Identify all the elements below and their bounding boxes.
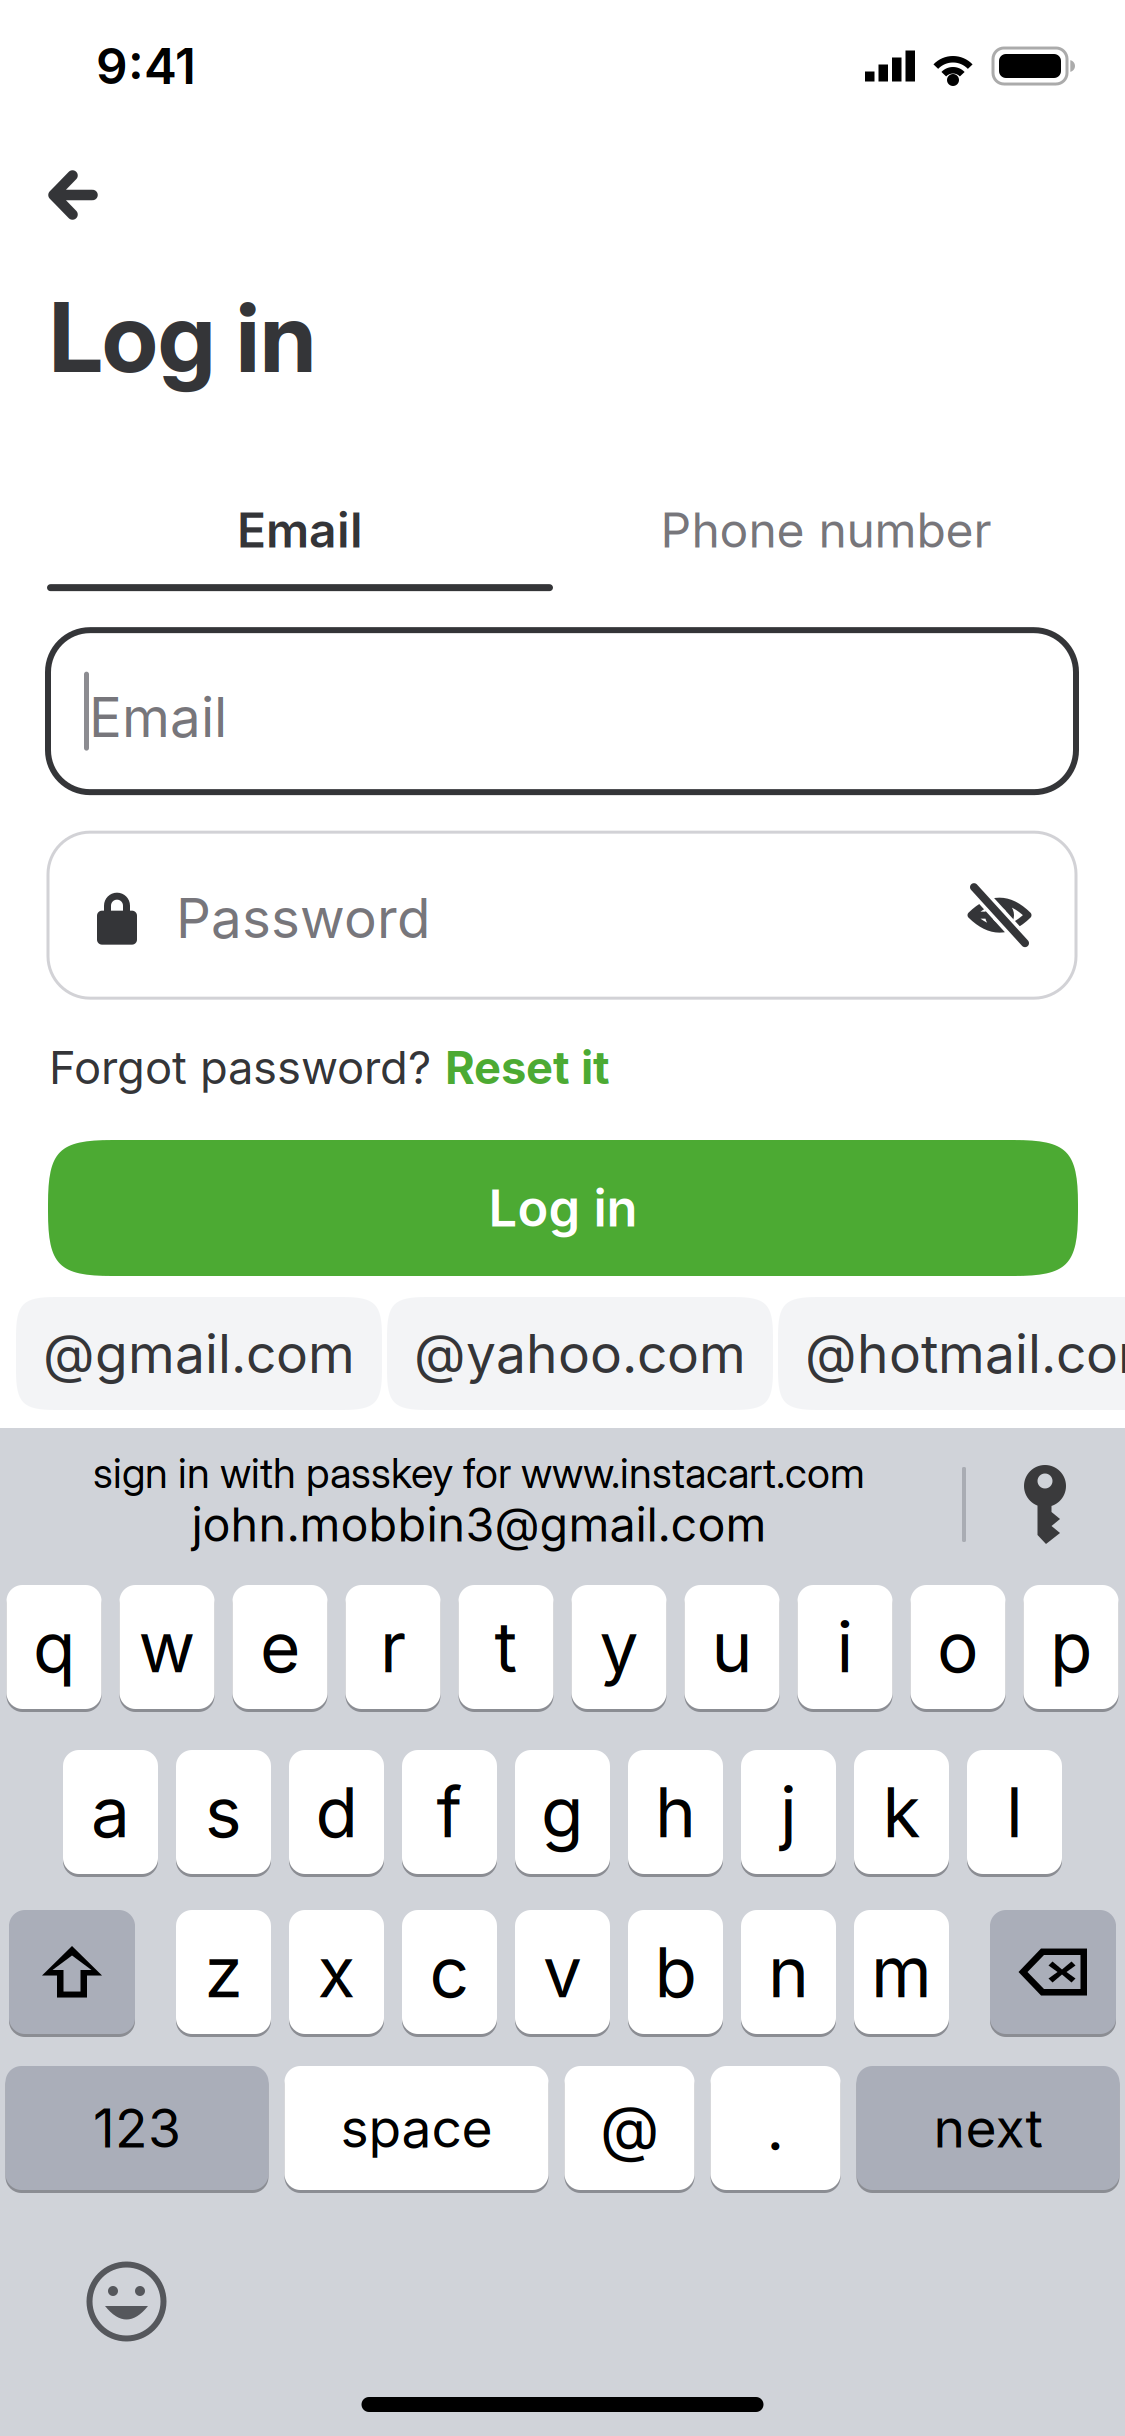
button[interactable]: z [176, 1910, 271, 2037]
staticText: @yahoo.com [414, 1321, 746, 1386]
button[interactable]: w [119, 1585, 214, 1712]
staticText: Forgot password? [49, 1040, 431, 1095]
staticText: b [654, 1930, 696, 2014]
staticText: v [543, 1930, 582, 2014]
button[interactable]: r [345, 1585, 440, 1712]
button[interactable]: f [402, 1750, 497, 1877]
button[interactable]: next [856, 2066, 1119, 2193]
button[interactable]: @gmail.com [16, 1297, 382, 1410]
button[interactable]: Delete [990, 1910, 1116, 2037]
button[interactable]: 123 [5, 2066, 268, 2193]
staticText: t [494, 1605, 517, 1689]
button[interactable]: Reset it [431, 1040, 610, 1095]
button[interactable]: . [710, 2066, 840, 2193]
button[interactable]: t [458, 1585, 553, 1712]
staticText: space [340, 2096, 492, 2160]
button[interactable]: j [741, 1750, 836, 1877]
staticText: i [836, 1605, 853, 1689]
staticText: g [541, 1770, 584, 1854]
staticText: Email [237, 501, 363, 559]
staticText: a [91, 1770, 130, 1854]
staticText: Phone number [660, 501, 991, 559]
staticText: Log in [488, 1177, 637, 1239]
button[interactable]: u [684, 1585, 779, 1712]
button[interactable]: h [628, 1750, 723, 1877]
staticText: . [766, 2091, 784, 2165]
staticText: @ [600, 2091, 659, 2165]
staticText: o [937, 1605, 979, 1689]
button[interactable]: b [628, 1910, 723, 2037]
button[interactable]: @ [564, 2066, 694, 2193]
button[interactable]: x [289, 1910, 384, 2037]
button[interactable]: Phone number [553, 476, 1099, 591]
staticText: q [33, 1605, 75, 1689]
staticText: x [317, 1930, 355, 2014]
staticText: 123 [93, 2096, 181, 2160]
staticText: h [655, 1770, 696, 1854]
button[interactable]: p [1023, 1585, 1118, 1712]
button[interactable]: i [797, 1585, 892, 1712]
button[interactable]: @yahoo.com [387, 1297, 773, 1410]
staticText: sign in with passkey for www.instacart.c… [93, 1448, 865, 1498]
button[interactable]: space [284, 2066, 548, 2193]
staticText: next [933, 2096, 1042, 2160]
button[interactable]: a [63, 1750, 158, 1877]
staticText: z [204, 1930, 242, 2014]
staticText: l [1006, 1770, 1023, 1854]
button[interactable]: d [289, 1750, 384, 1877]
staticText: y [599, 1605, 638, 1689]
staticText: r [380, 1605, 406, 1689]
staticText: d [315, 1770, 357, 1854]
button[interactable]: Back [25, 147, 121, 243]
staticText: s [205, 1770, 242, 1854]
staticText: @gmail.com [43, 1321, 355, 1386]
staticText: 9:41 [96, 36, 196, 96]
staticText: john.mobbin3@gmail.com [191, 1496, 766, 1553]
staticText: @hotmail.com [805, 1321, 1125, 1386]
staticText: Password [176, 885, 430, 951]
button[interactable]: Email [47, 476, 553, 591]
staticText: e [260, 1605, 300, 1689]
button[interactable]: g [515, 1750, 610, 1877]
button[interactable]: v [515, 1910, 610, 2037]
button[interactable]: q [6, 1585, 101, 1712]
button[interactable]: k [854, 1750, 949, 1877]
staticText: Log in [49, 279, 316, 395]
button[interactable]: Shift [9, 1910, 135, 2037]
staticText: j [780, 1770, 797, 1854]
button[interactable]: c [402, 1910, 497, 2037]
staticText: f [436, 1770, 462, 1854]
staticText: u [711, 1605, 752, 1689]
staticText: w [138, 1605, 195, 1689]
staticText: Reset it [445, 1040, 610, 1095]
button[interactable]: o [910, 1585, 1005, 1712]
button[interactable]: @hotmail.com [778, 1297, 1125, 1410]
button[interactable]: y [571, 1585, 666, 1712]
button[interactable]: e [232, 1585, 327, 1712]
staticText: p [1050, 1605, 1092, 1689]
staticText: m [871, 1930, 932, 2014]
button[interactable]: m [854, 1910, 949, 2037]
staticText: Email [89, 684, 227, 750]
staticText: c [429, 1930, 469, 2014]
button[interactable]: Emoji keyboard [86, 2261, 167, 2342]
button[interactable]: Password [48, 832, 1076, 998]
button[interactable]: l [967, 1750, 1062, 1877]
button[interactable]: Log in [48, 1140, 1078, 1276]
button[interactable]: n [741, 1910, 836, 2037]
button[interactable]: Email [48, 630, 1076, 792]
staticText: k [882, 1770, 920, 1854]
button[interactable]: s [176, 1750, 271, 1877]
staticText: n [768, 1930, 809, 2014]
